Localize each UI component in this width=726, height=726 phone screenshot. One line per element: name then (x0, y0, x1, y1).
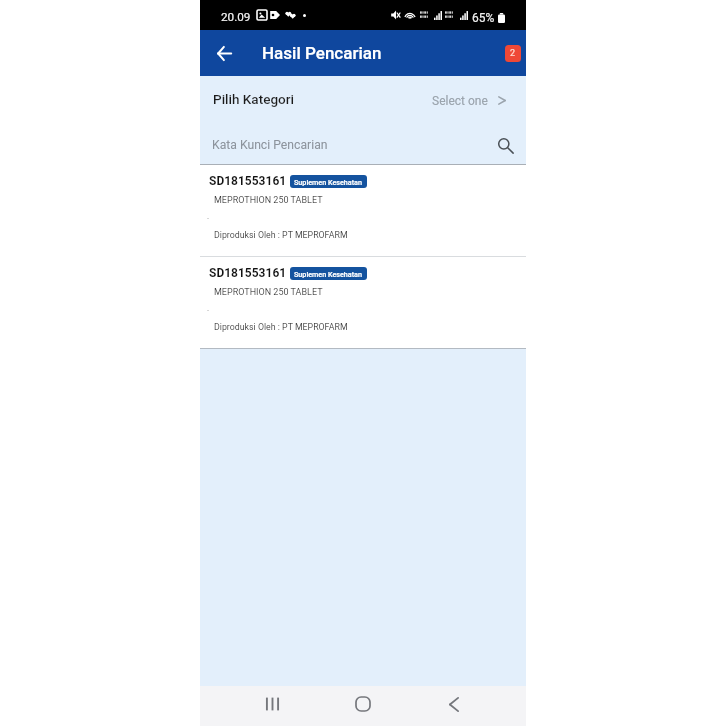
button[interactable]: Home (343, 686, 383, 726)
staticText: Pilih Kategori (213, 91, 294, 107)
staticText: Suplemen Kesehatan (294, 270, 363, 278)
staticText: Diproduksi Oleh : PT MEPROFARM (214, 322, 348, 332)
staticText: MEPROTHION 250 TABLET (214, 195, 323, 206)
staticText: Suplemen Kesehatan (294, 178, 363, 186)
staticText: . (207, 212, 210, 221)
staticText: Select one (432, 94, 488, 108)
staticText: SD181553161 (209, 174, 287, 188)
staticText: 2 (510, 48, 516, 59)
button[interactable]: Pilih Kategori (200, 76, 526, 125)
button[interactable]: SD181553161 (200, 165, 526, 256)
button[interactable]: SD181553161 (200, 257, 526, 348)
button[interactable]: Kata Kunci Pencarian (200, 125, 526, 164)
button[interactable]: Back (434, 686, 474, 726)
button[interactable]: Back (209, 38, 239, 68)
staticText: 65% (472, 11, 495, 25)
button[interactable]: Notifications (504, 44, 522, 63)
staticText: Hasil Pencarian (262, 43, 382, 63)
staticText: SD181553161 (209, 266, 287, 280)
staticText: . (207, 304, 210, 313)
button[interactable]: Recent apps (252, 686, 292, 726)
staticText: MEPROTHION 250 TABLET (214, 287, 323, 298)
staticText: Diproduksi Oleh : PT MEPROFARM (214, 230, 348, 240)
staticText: Kata Kunci Pencarian (212, 138, 328, 152)
staticText: 20.09 (221, 10, 251, 24)
